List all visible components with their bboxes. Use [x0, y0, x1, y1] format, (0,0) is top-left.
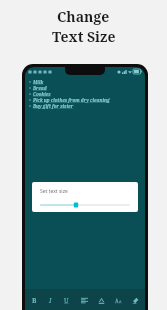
button[interactable]: Underline — [62, 294, 71, 306]
staticText: Cookies — [33, 91, 51, 97]
button[interactable]: Pick up clothes from dry cleaning — [29, 97, 145, 103]
button[interactable]: Text size slider — [40, 201, 130, 209]
staticText: Milk — [33, 79, 44, 85]
staticText: U — [64, 296, 69, 305]
button[interactable]: Font color — [96, 294, 106, 306]
button[interactable]: Set text size — [32, 182, 138, 212]
staticText: Set text size — [40, 188, 68, 195]
staticText: B — [32, 296, 37, 305]
button[interactable]: Highlight — [130, 294, 140, 306]
staticText: Pick up clothes from dry cleaning — [33, 97, 110, 103]
staticText: Text Size — [52, 27, 116, 46]
staticText: I — [49, 296, 52, 305]
staticText: Change — [57, 7, 110, 26]
staticText: Buy gift for sister — [33, 103, 74, 109]
button[interactable]: Text size — [113, 294, 123, 306]
button[interactable]: Cookies — [29, 91, 145, 97]
staticText: Bread — [33, 85, 47, 91]
button[interactable]: Bold — [30, 294, 39, 306]
button[interactable]: Buy gift for sister — [29, 103, 145, 109]
button[interactable]: Align — [79, 294, 89, 306]
button[interactable]: Italic — [46, 294, 55, 306]
button[interactable]: Bread — [29, 85, 145, 91]
button[interactable]: Milk — [29, 79, 145, 85]
